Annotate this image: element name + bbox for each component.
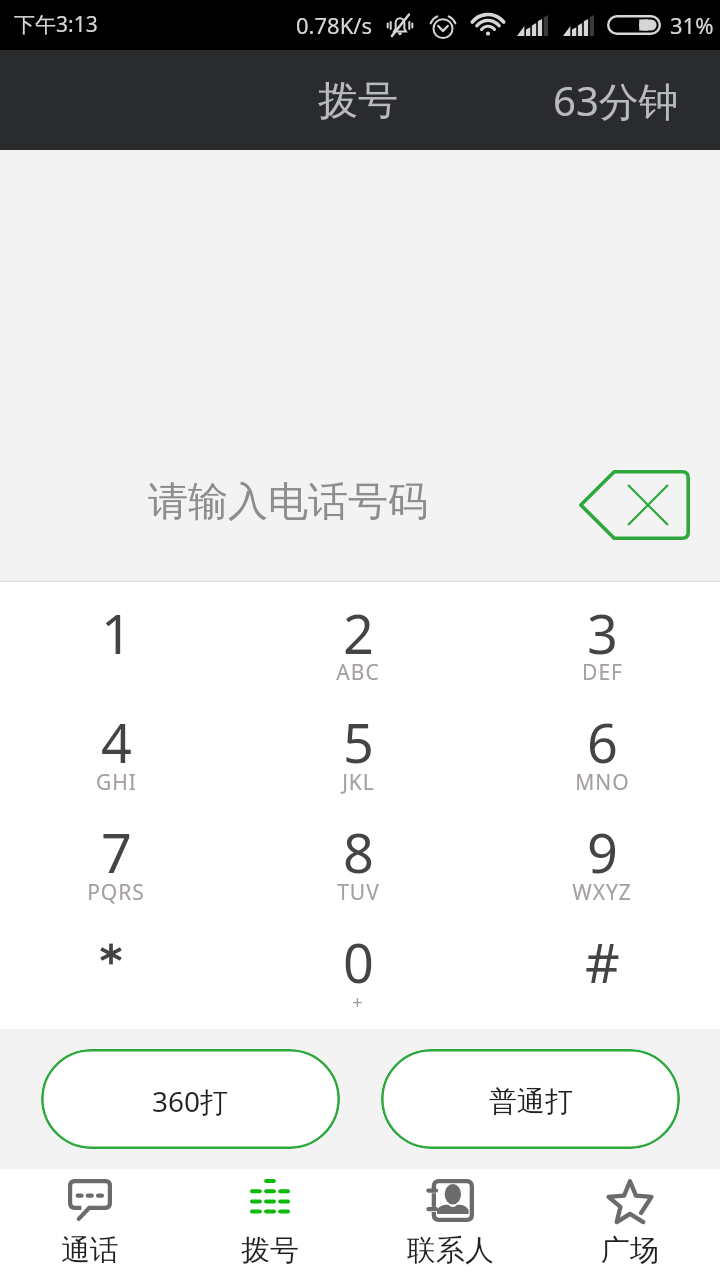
- staticText: 普通打: [489, 1084, 573, 1119]
- button[interactable]: 拨号: [288, 50, 428, 150]
- staticText: 拨号: [318, 75, 398, 125]
- staticText: 8: [343, 815, 374, 889]
- button[interactable]: 普通打: [381, 1049, 680, 1149]
- staticText: 3: [587, 596, 618, 670]
- button[interactable]: 广场: [540, 1169, 720, 1280]
- staticText: 1: [101, 596, 132, 670]
- button[interactable]: 6: [482, 696, 720, 806]
- staticText: 4: [101, 705, 132, 779]
- staticText: #: [585, 925, 620, 999]
- staticText: 6: [587, 705, 618, 779]
- staticText: TUV: [337, 878, 380, 907]
- button[interactable]: 360打: [41, 1049, 340, 1149]
- staticText: 通话: [61, 1232, 119, 1269]
- staticText: GHI: [96, 768, 137, 797]
- button[interactable]: 1: [0, 587, 236, 696]
- staticText: 下午3:13: [14, 10, 98, 39]
- button[interactable]: [0, 916, 236, 1026]
- staticText: 广场: [601, 1232, 659, 1269]
- button[interactable]: 0: [238, 916, 478, 1026]
- staticText: JKL: [342, 768, 375, 797]
- staticText: 360打: [152, 1082, 229, 1120]
- staticText: 请输入电话号码: [148, 476, 428, 526]
- staticText: 5: [343, 705, 374, 779]
- staticText: 0: [343, 925, 374, 999]
- staticText: PQRS: [87, 878, 145, 907]
- button[interactable]: 通话: [0, 1169, 180, 1280]
- button[interactable]: 7: [0, 806, 236, 916]
- button[interactable]: 9: [482, 806, 720, 916]
- button[interactable]: 拨号: [180, 1169, 360, 1280]
- staticText: 联系人: [407, 1232, 494, 1269]
- staticText: 2: [343, 596, 374, 670]
- staticText: 63分钟: [553, 73, 679, 128]
- button[interactable]: Delete: [554, 446, 714, 564]
- staticText: DEF: [582, 658, 623, 687]
- button[interactable]: 3: [482, 587, 720, 696]
- staticText: 拨号: [241, 1232, 299, 1269]
- staticText: MNO: [575, 768, 630, 797]
- staticText: 31%: [670, 10, 714, 40]
- button[interactable]: 2: [238, 587, 478, 696]
- staticText: 7: [101, 815, 132, 889]
- button[interactable]: 5: [238, 696, 478, 806]
- staticText: 0.78K/s: [296, 10, 372, 40]
- button[interactable]: 4: [0, 696, 236, 806]
- button[interactable]: 8: [238, 806, 478, 916]
- staticText: +: [352, 990, 364, 1015]
- button[interactable]: 63分钟: [535, 50, 697, 150]
- staticText: WXYZ: [572, 878, 632, 907]
- staticText: 9: [587, 815, 618, 889]
- button[interactable]: #: [482, 916, 720, 1026]
- button[interactable]: 联系人: [360, 1169, 540, 1280]
- button[interactable]: 请输入电话号码: [40, 446, 530, 556]
- staticText: ABC: [336, 658, 380, 687]
